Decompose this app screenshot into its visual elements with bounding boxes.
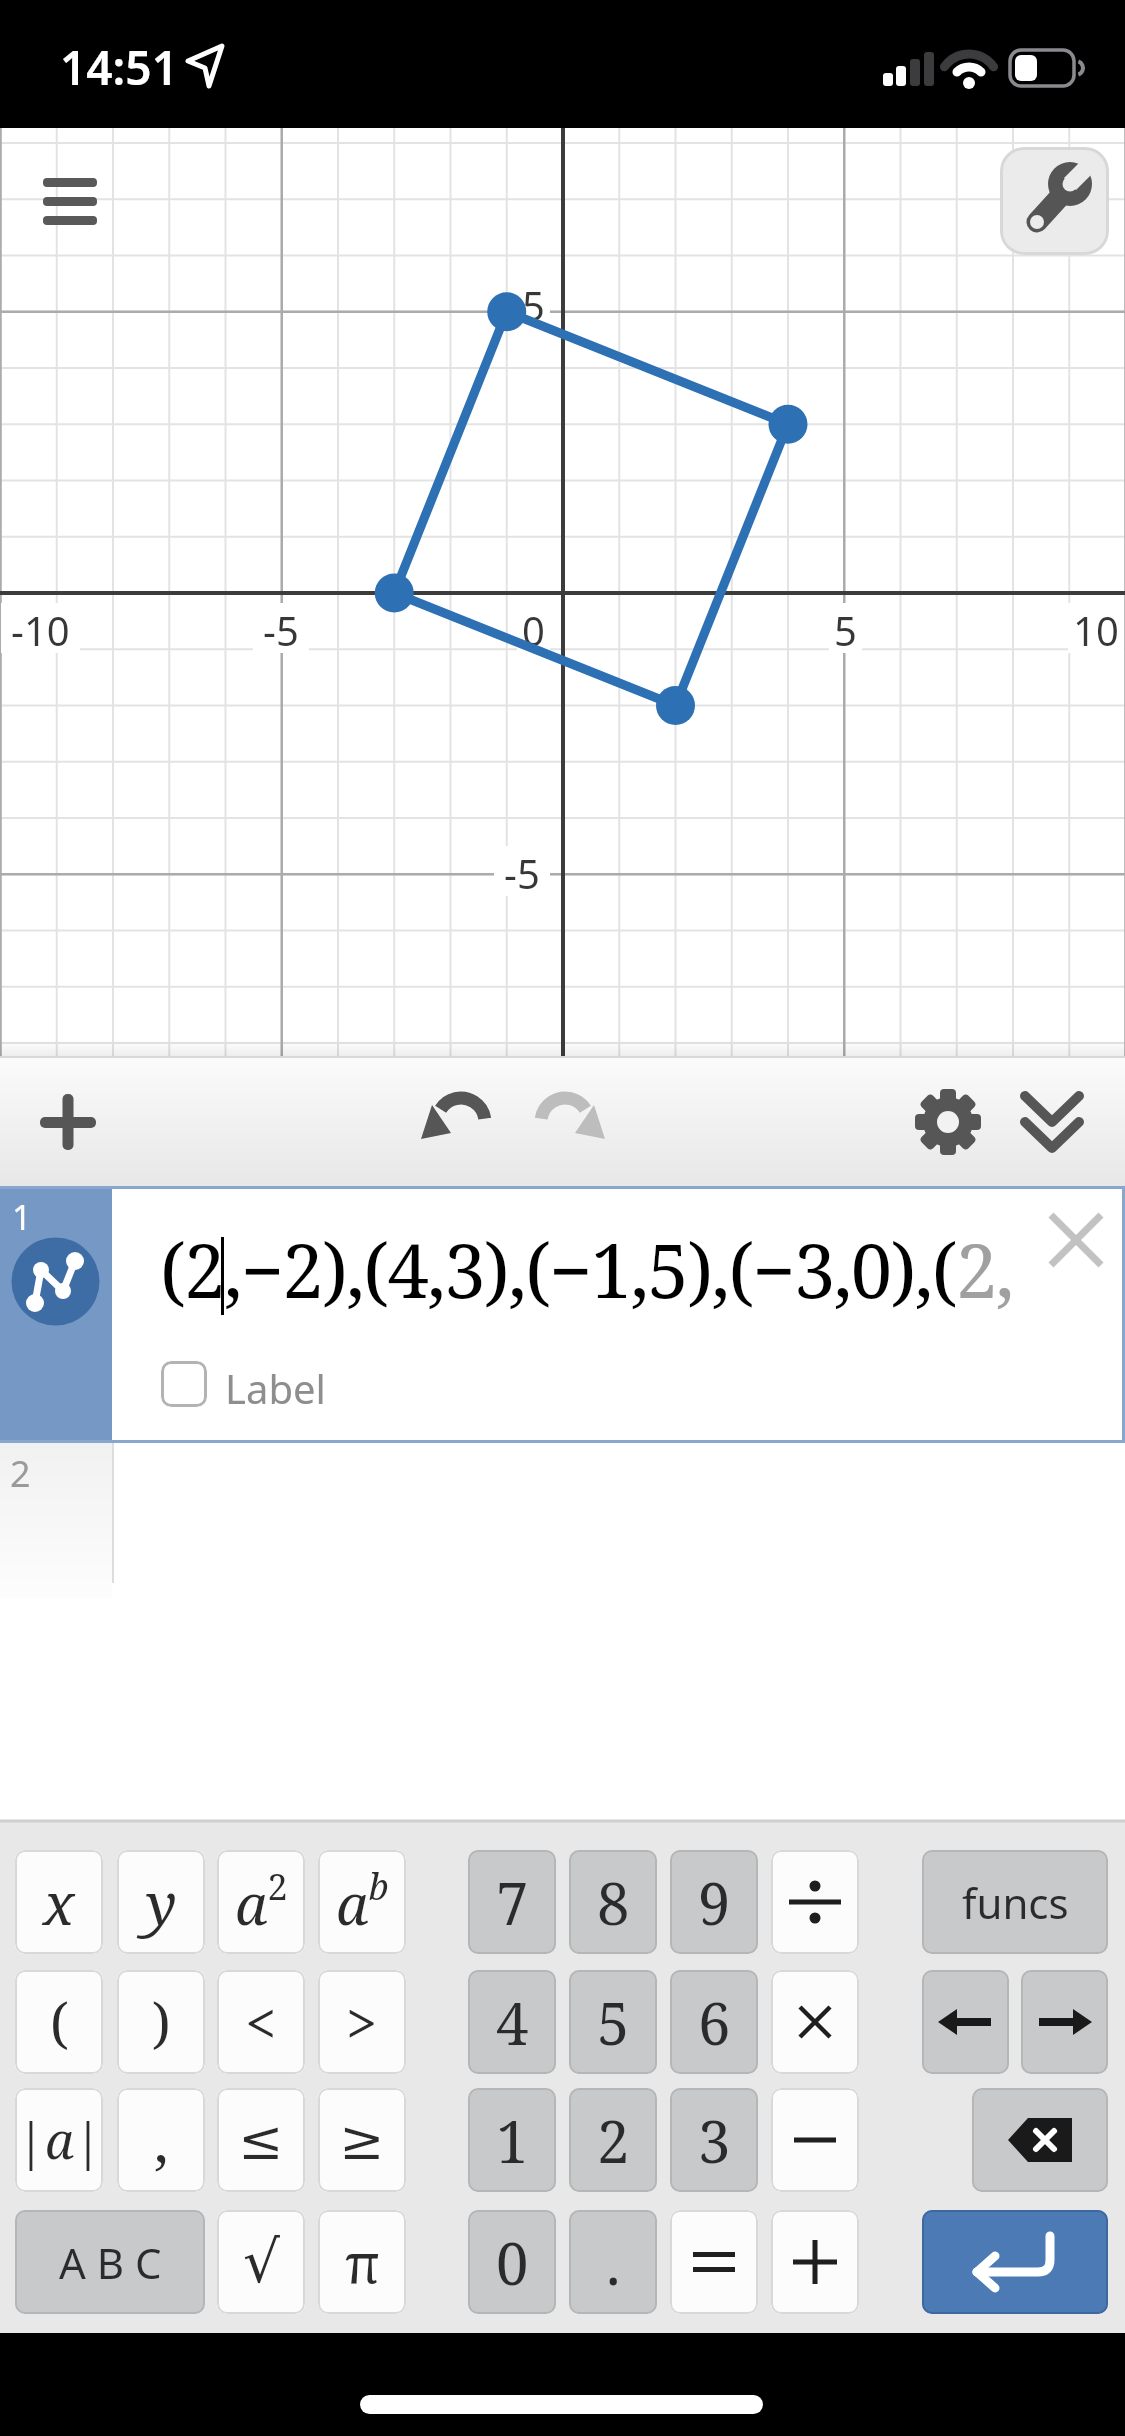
- staticText: 0: [522, 603, 545, 653]
- staticText: 3: [698, 2101, 731, 2180]
- button[interactable]: [1000, 147, 1109, 255]
- staticText: 8: [597, 1863, 630, 1942]
- staticText: A B C: [59, 2234, 162, 2291]
- button[interactable]: [771, 1850, 859, 1954]
- staticText: 14:51: [60, 36, 178, 96]
- button[interactable]: 4: [468, 1970, 556, 2074]
- button[interactable]: 9: [670, 1850, 758, 1954]
- staticText: π: [345, 2225, 380, 2299]
- staticText: 7: [496, 1863, 529, 1942]
- button[interactable]: ≥: [318, 2088, 406, 2192]
- staticText: 2: [10, 1449, 31, 1493]
- button[interactable]: [771, 1970, 859, 2074]
- staticText: 1: [12, 1194, 32, 1234]
- button[interactable]: 8: [569, 1850, 657, 1954]
- staticText: .: [606, 2223, 621, 2302]
- button[interactable]: ,: [117, 2088, 205, 2192]
- button[interactable]: [0, 1443, 112, 1598]
- button[interactable]: [20, 155, 120, 245]
- button[interactable]: [670, 2210, 758, 2314]
- button[interactable]: π: [318, 2210, 406, 2314]
- button[interactable]: [18, 1072, 118, 1172]
- staticText: ≥: [339, 2109, 385, 2172]
- staticText: (: [50, 1985, 69, 2059]
- staticText: ,: [154, 2101, 169, 2180]
- button[interactable]: |a|: [15, 2088, 103, 2192]
- button[interactable]: 6: [670, 1970, 758, 2074]
- button[interactable]: a2: [217, 1850, 305, 1954]
- button[interactable]: x: [15, 1850, 103, 1954]
- staticText: funcs: [962, 1874, 1069, 1931]
- button[interactable]: 3: [670, 2088, 758, 2192]
- staticText: ): [152, 1985, 171, 2059]
- button[interactable]: .: [569, 2210, 657, 2314]
- button[interactable]: 7: [468, 1850, 556, 1954]
- staticText: <: [245, 1984, 277, 2060]
- button[interactable]: [1021, 1970, 1108, 2074]
- staticText: y: [146, 1863, 177, 1942]
- button[interactable]: funcs: [922, 1850, 1108, 1954]
- staticText: 4: [496, 1983, 529, 2062]
- staticText: |a|: [17, 2106, 102, 2174]
- staticText: x: [43, 1863, 75, 1942]
- button[interactable]: 2: [569, 2088, 657, 2192]
- button[interactable]: 1: [468, 2088, 556, 2192]
- button[interactable]: [0, 1189, 112, 1440]
- button[interactable]: ): [117, 1970, 205, 2074]
- staticText: 5: [834, 603, 857, 653]
- button[interactable]: (: [15, 1970, 103, 2074]
- staticText: >: [346, 1984, 378, 2060]
- button[interactable]: >: [318, 1970, 406, 2074]
- button[interactable]: ≤: [217, 2088, 305, 2192]
- staticText: ≤: [238, 2109, 284, 2172]
- button[interactable]: [405, 1070, 505, 1170]
- button[interactable]: 5: [569, 1970, 657, 2074]
- staticText: 6: [698, 1983, 731, 2062]
- button[interactable]: ab: [318, 1850, 406, 1954]
- button[interactable]: [1030, 1196, 1120, 1286]
- staticText: 5: [597, 1983, 630, 2062]
- button[interactable]: [161, 1361, 207, 1407]
- button[interactable]: [771, 2088, 859, 2192]
- button[interactable]: y: [117, 1850, 205, 1954]
- staticText: -5: [504, 846, 540, 896]
- staticText: a2: [235, 1862, 288, 1942]
- staticText: Label: [225, 1361, 326, 1407]
- button[interactable]: [972, 2088, 1108, 2192]
- staticText: 1: [496, 2101, 529, 2180]
- staticText: 10: [1073, 603, 1119, 653]
- staticText: ab: [336, 1862, 389, 1942]
- button[interactable]: [922, 2210, 1108, 2314]
- staticText: 2: [597, 2101, 630, 2180]
- staticText: 0: [496, 2223, 529, 2302]
- staticText: 5: [522, 278, 545, 328]
- staticText: (2,−2),(4,3),(−1,5),(−3,0),(2,: [160, 1219, 1013, 1320]
- staticText: -5: [263, 603, 299, 653]
- staticText: -10: [11, 603, 70, 653]
- staticText: √: [243, 2228, 280, 2296]
- button[interactable]: [515, 1070, 615, 1170]
- button[interactable]: [771, 2210, 859, 2314]
- button[interactable]: <: [217, 1970, 305, 2074]
- button[interactable]: √: [217, 2210, 305, 2314]
- button[interactable]: 0: [468, 2210, 556, 2314]
- button[interactable]: A B C: [15, 2210, 205, 2314]
- button[interactable]: [898, 1070, 998, 1170]
- button[interactable]: [1002, 1070, 1102, 1170]
- button[interactable]: [922, 1970, 1009, 2074]
- staticText: 9: [698, 1863, 731, 1942]
